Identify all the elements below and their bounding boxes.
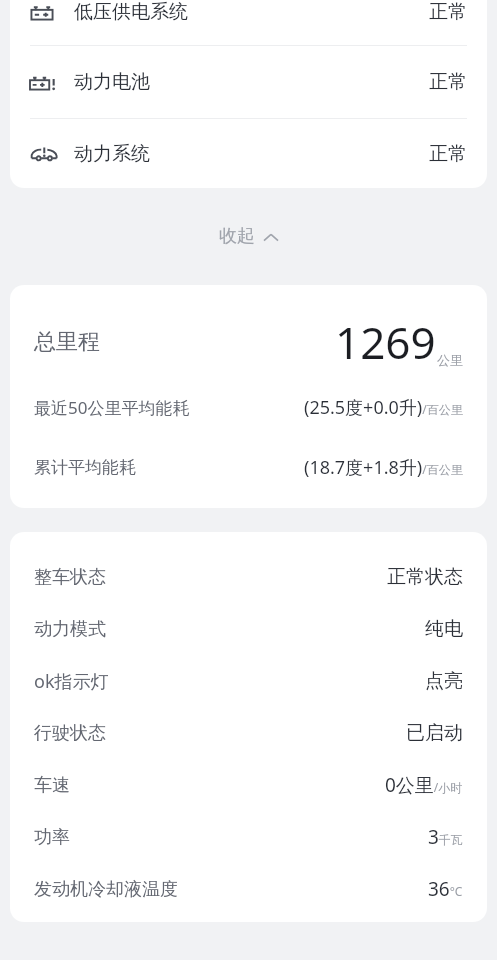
staticText: 最近50公里平均能耗 (34, 396, 190, 419)
staticText: 动力模式 (34, 618, 106, 641)
staticText: 收起 (219, 225, 255, 248)
button[interactable]: 行驶状态 (10, 707, 487, 759)
staticText: 车速 (34, 774, 70, 797)
button[interactable]: 总里程 (10, 307, 487, 377)
staticText: (25.5度+0.0升)/百公里 (304, 395, 463, 420)
staticText: 正常 (429, 142, 467, 166)
staticText: ok指示灯 (34, 669, 109, 694)
staticText: 整车状态 (34, 566, 106, 589)
staticText: 发动机冷却液温度 (34, 878, 178, 901)
button[interactable]: 低压供电系统 (10, 0, 487, 45)
button[interactable]: 动力电池 (10, 46, 487, 118)
staticText: 0公里/小时 (385, 772, 463, 798)
staticText: 36°C (428, 876, 463, 902)
staticText: (18.7度+1.8升)/百公里 (304, 455, 463, 480)
staticText: 正常状态 (387, 565, 463, 589)
button[interactable]: 功率 (10, 811, 487, 863)
staticText: 已启动 (406, 721, 463, 745)
button[interactable]: 整车状态 (10, 551, 487, 603)
staticText: 正常 (429, 70, 467, 94)
button[interactable]: 累计平均能耗 (10, 437, 487, 497)
staticText: 正常 (429, 0, 467, 24)
staticText: 纯电 (425, 617, 463, 641)
button[interactable]: 最近50公里平均能耗 (10, 377, 487, 437)
button[interactable]: ok指示灯 (10, 655, 487, 707)
staticText: 行驶状态 (34, 722, 106, 745)
button[interactable]: 动力模式 (10, 603, 487, 655)
button[interactable]: 车速 (10, 759, 487, 811)
staticText: 3千瓦 (428, 824, 463, 850)
button[interactable]: 动力系统 (10, 119, 487, 188)
staticText: 公里 (437, 352, 463, 368)
staticText: 1269 (335, 312, 436, 372)
staticText: 功率 (34, 826, 70, 849)
staticText: 点亮 (425, 669, 463, 693)
staticText: 低压供电系统 (74, 0, 188, 24)
staticText: 动力系统 (74, 142, 150, 166)
staticText: 累计平均能耗 (34, 457, 136, 478)
staticText: 总里程 (34, 328, 100, 356)
button[interactable]: 收起 (201, 217, 296, 256)
button[interactable]: 发动机冷却液温度 (10, 863, 487, 915)
staticText: 动力电池 (74, 70, 150, 94)
